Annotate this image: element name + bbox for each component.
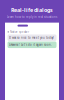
staticText: Real-life dialogs: [11, 6, 53, 14]
staticText: Learn how to reply in real situations: [7, 15, 57, 19]
staticText: Native speaker: [10, 30, 29, 34]
staticText: Likewise! Let's do it again soon.: [9, 43, 52, 46]
staticText: It was so nice to meet you today!: [9, 36, 54, 39]
